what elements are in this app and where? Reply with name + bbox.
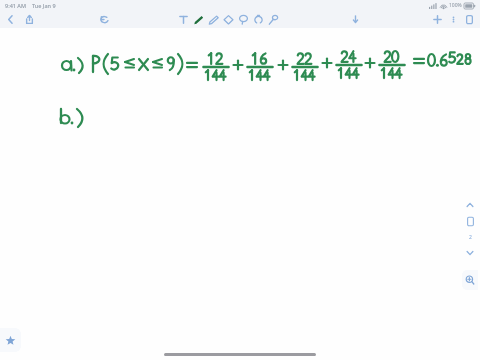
button[interactable]: Eraser — [222, 13, 235, 26]
staticText: 9:41 AM — [5, 2, 27, 9]
button[interactable]: Bookmark — [349, 13, 362, 26]
button[interactable]: Lasso — [237, 13, 250, 26]
button[interactable]: Pen — [192, 13, 205, 26]
button[interactable]: Laser pointer — [267, 13, 280, 26]
button[interactable]: Share — [23, 13, 36, 26]
staticText: 100% — [449, 2, 462, 9]
button[interactable]: Scroll up — [464, 199, 476, 211]
button[interactable]: Scroll down — [464, 247, 476, 259]
button[interactable]: Page number — [465, 232, 475, 242]
staticText: Tue Jan 9 — [32, 2, 56, 9]
button[interactable]: Pencil — [207, 13, 220, 26]
button[interactable]: Add — [431, 13, 444, 26]
button[interactable]: More options — [449, 15, 458, 24]
button[interactable]: Zoom — [462, 270, 478, 290]
button[interactable]: Back — [4, 13, 17, 26]
button[interactable]: Page — [466, 216, 475, 227]
button[interactable]: Shapes — [252, 13, 265, 26]
button[interactable]: Text tool — [177, 13, 190, 26]
button[interactable]: Undo — [98, 13, 111, 26]
staticText: 2 — [469, 234, 472, 241]
button[interactable]: Pages — [463, 13, 476, 26]
button[interactable]: Favorites — [0, 328, 21, 352]
